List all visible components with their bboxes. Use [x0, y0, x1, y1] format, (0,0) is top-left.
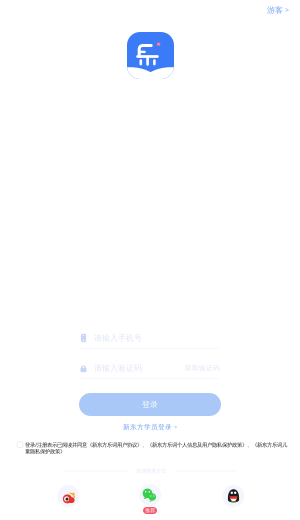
- staticText: >: [174, 423, 177, 431]
- staticText: >: [285, 6, 289, 14]
- button[interactable]: Sign in with QQ: [222, 485, 244, 507]
- button[interactable]: 登录: [79, 393, 221, 416]
- staticText: 新东方学员登录: [123, 423, 172, 431]
- staticText: 其他登录方式: [136, 468, 166, 474]
- button[interactable]: 获取验证码: [181, 364, 220, 372]
- button[interactable]: Sign in with WeChat: [139, 484, 161, 514]
- button[interactable]: Sign in with Weibo: [57, 485, 79, 507]
- button[interactable]: 登录/注册表示已阅读并同意《新东方乐词用户协议》、《新东方乐词个人信息及用户隐私…: [17, 441, 287, 455]
- staticText: 登录: [142, 400, 158, 409]
- staticText: 登录/注册表示已阅读并同意《新东方乐词用户协议》、《新东方乐词个人信息及用户隐私…: [25, 441, 287, 455]
- button[interactable]: 新东方学员登录: [119, 420, 181, 434]
- staticText: 请输入验证码: [94, 363, 142, 373]
- staticText: 请输入手机号: [94, 333, 142, 343]
- staticText: 推荐: [145, 507, 155, 514]
- staticText: 获取验证码: [185, 364, 220, 372]
- button[interactable]: 游客: [263, 2, 293, 18]
- staticText: 游客: [267, 5, 283, 15]
